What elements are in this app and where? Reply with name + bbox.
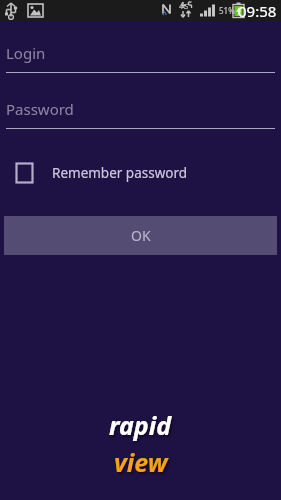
staticText: OK: [131, 226, 151, 245]
staticText: view: [114, 445, 168, 479]
staticText: 09:58: [238, 1, 277, 21]
button[interactable]: OK: [4, 216, 277, 255]
staticText: Login: [6, 43, 46, 63]
staticText: rapid: [109, 408, 172, 442]
button[interactable]: Remember password checkbox: [15, 156, 188, 190]
staticText: 51%: [219, 5, 235, 16]
button[interactable]: Password: [6, 99, 275, 129]
staticText: Remember password: [52, 164, 188, 182]
staticText: 4G: [179, 2, 189, 12]
other: Remember password checkbox: [15, 162, 34, 184]
button[interactable]: Login: [6, 43, 275, 73]
staticText: Password: [6, 99, 74, 119]
